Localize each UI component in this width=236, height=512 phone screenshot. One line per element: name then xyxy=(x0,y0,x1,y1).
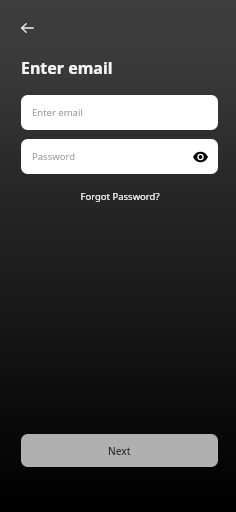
staticText: Enter email xyxy=(32,106,83,119)
staticText: Next xyxy=(108,444,131,458)
button[interactable]: Back xyxy=(10,11,44,45)
button[interactable]: Next xyxy=(21,434,218,467)
staticText: Password xyxy=(32,150,75,163)
button[interactable]: Password xyxy=(21,139,218,174)
button[interactable]: Forgot Password? xyxy=(80,190,160,203)
button[interactable]: Show password xyxy=(190,147,210,167)
staticText: Enter email xyxy=(21,57,113,79)
button[interactable]: Enter email xyxy=(21,95,218,130)
